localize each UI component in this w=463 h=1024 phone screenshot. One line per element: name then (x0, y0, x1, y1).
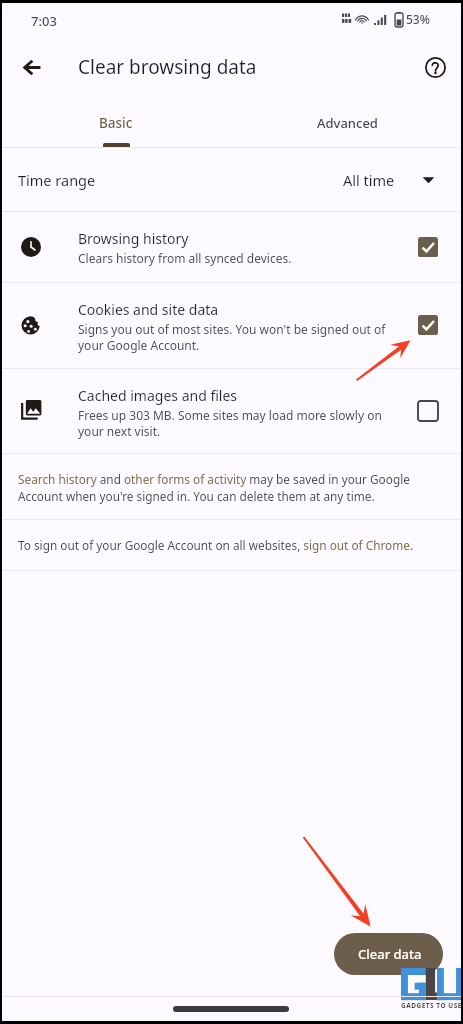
staticText: To sign out of your Google Account on al… (18, 537, 428, 553)
button[interactable]: Help (411, 43, 459, 91)
staticText: 53% (406, 11, 430, 27)
staticText: Signs you out of most sites. You won't b… (78, 321, 392, 354)
staticText: Cached images and files (78, 386, 238, 405)
button[interactable]: Back (8, 43, 56, 91)
button[interactable]: Advanced (231, 96, 463, 147)
staticText: GADGETS TO USE (401, 1001, 462, 1010)
staticText: Clear data (358, 945, 422, 963)
button[interactable]: Cached images and files (0, 369, 463, 453)
staticText: Clears history from all synced devices. (78, 250, 292, 266)
button[interactable]: Clear data (334, 933, 443, 975)
button[interactable]: Cookies and site data (0, 283, 463, 368)
staticText: Basic (99, 114, 133, 132)
staticText: Search history and other forms of activi… (18, 471, 416, 504)
staticText: Cookies and site data (78, 300, 219, 319)
button[interactable]: Browsing history (0, 212, 463, 282)
button[interactable]: Time range (0, 148, 463, 211)
staticText: Clear browsing data (78, 54, 257, 80)
staticText: 7:03 (31, 12, 57, 30)
button[interactable]: Basic (0, 96, 231, 147)
staticText: Advanced (317, 114, 378, 132)
staticText: Time range (18, 170, 96, 190)
staticText: All time (343, 170, 395, 190)
button[interactable] (0, 96, 463, 147)
staticText: Browsing history (78, 229, 189, 248)
staticText: Frees up 303 MB. Some sites may load mor… (78, 407, 392, 440)
